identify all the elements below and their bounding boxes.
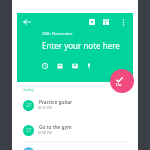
button[interactable]: Delete note (98, 14, 114, 30)
button[interactable]: Attach photo (69, 60, 81, 72)
button[interactable]: Set reminder time (39, 60, 51, 72)
staticText: Practice guitar (39, 99, 73, 106)
staticText: 27 (26, 102, 32, 109)
button[interactable]: Record audio (83, 60, 95, 72)
button[interactable]: More options (115, 14, 131, 30)
button[interactable]: 27 (17, 118, 133, 143)
button[interactable]: 27 (17, 93, 133, 118)
staticText: 06:15 PM (38, 106, 52, 110)
button[interactable]: Add image (84, 14, 100, 30)
staticText: 07:00 PM (38, 131, 52, 135)
staticText: Do (116, 82, 122, 88)
button[interactable]: Save note (110, 69, 134, 93)
staticText: Today (23, 87, 35, 92)
staticText: 27 (26, 127, 32, 134)
staticText: Go to the gym (39, 124, 72, 131)
button[interactable]: Set date (54, 60, 66, 72)
staticText: 28th November (42, 31, 73, 37)
staticText: Enter your note here (42, 40, 120, 51)
button[interactable]: Back (19, 14, 35, 30)
